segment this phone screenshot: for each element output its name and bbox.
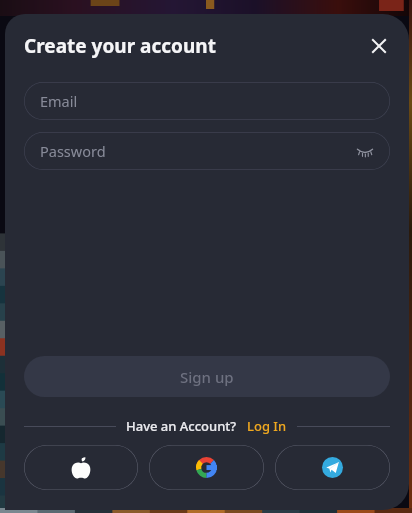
staticText: Have an Account?	[126, 417, 237, 435]
staticText: Password	[40, 141, 106, 161]
button[interactable]: Email	[24, 82, 390, 120]
button[interactable]: Close	[362, 29, 396, 63]
button[interactable]: Show password	[354, 140, 376, 162]
button[interactable]: Sign up with Telegram	[275, 445, 390, 490]
staticText: Create your account	[24, 33, 216, 59]
button[interactable]: Sign up	[24, 356, 390, 397]
button[interactable]: Password	[24, 132, 390, 170]
button[interactable]: Sign up with Apple	[24, 445, 138, 490]
staticText: Log In	[247, 417, 287, 435]
staticText: Sign up	[180, 367, 234, 387]
button[interactable]: Log In	[247, 417, 297, 435]
staticText: Email	[40, 91, 78, 111]
button[interactable]: Sign up with Google	[149, 445, 264, 490]
